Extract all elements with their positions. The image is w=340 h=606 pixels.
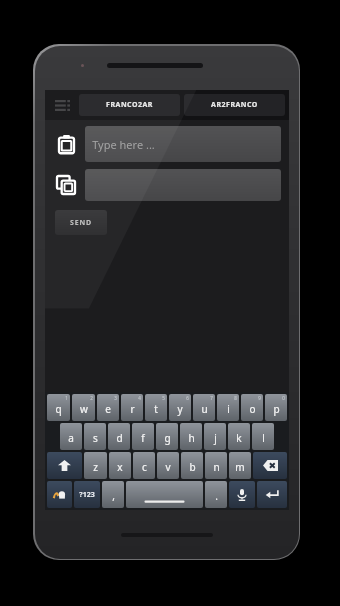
staticText: k xyxy=(236,431,242,445)
button[interactable]: r xyxy=(121,394,143,421)
staticText: 0 xyxy=(282,395,285,401)
staticText: 1 xyxy=(65,395,68,401)
staticText: j xyxy=(214,431,217,445)
staticText: i xyxy=(227,402,230,416)
button[interactable]: Enter xyxy=(257,481,287,508)
staticText: l xyxy=(262,431,265,445)
button[interactable]: j xyxy=(204,423,226,450)
button[interactable]: y xyxy=(169,394,191,421)
button[interactable]: Voice input xyxy=(229,481,255,508)
staticText: 4 xyxy=(138,395,141,401)
button[interactable]: Switch language xyxy=(47,481,72,508)
staticText: f xyxy=(141,431,145,445)
button[interactable]: a xyxy=(60,423,82,450)
button[interactable]: , xyxy=(102,481,124,508)
button[interactable]: FRANCO2AR xyxy=(79,94,180,116)
button[interactable]: Menu xyxy=(45,90,79,120)
button[interactable]: n xyxy=(205,452,227,479)
staticText: 2 xyxy=(90,395,93,401)
staticText: x xyxy=(117,460,123,474)
staticText: u xyxy=(201,402,208,416)
staticText: Type here ... xyxy=(92,137,155,152)
staticText: n xyxy=(213,460,220,474)
staticText: , xyxy=(112,489,115,503)
staticText: p xyxy=(273,402,280,416)
button[interactable]: l xyxy=(252,423,274,450)
button[interactable]: Paste xyxy=(51,129,81,159)
button[interactable]: k xyxy=(228,423,250,450)
button[interactable]: c xyxy=(133,452,155,479)
button[interactable]: q xyxy=(47,394,70,421)
staticText: 6 xyxy=(186,395,189,401)
staticText: . xyxy=(215,489,218,503)
staticText: 5 xyxy=(162,395,165,401)
button[interactable]: p xyxy=(265,394,287,421)
button[interactable] xyxy=(85,169,281,201)
button[interactable]: z xyxy=(84,452,107,479)
button[interactable]: b xyxy=(181,452,203,479)
staticText: 9 xyxy=(258,395,261,401)
button[interactable]: s xyxy=(84,423,106,450)
staticText: y xyxy=(177,402,183,416)
staticText: 8 xyxy=(234,395,237,401)
button[interactable]: Symbols xyxy=(74,481,100,508)
button[interactable]: Copy xyxy=(51,170,81,200)
button[interactable]: x xyxy=(109,452,131,479)
button[interactable]: w xyxy=(72,394,95,421)
button[interactable]: d xyxy=(108,423,130,450)
button[interactable]: t xyxy=(145,394,167,421)
button[interactable]: m xyxy=(229,452,251,479)
button[interactable]: f xyxy=(132,423,154,450)
button[interactable]: . xyxy=(205,481,227,508)
button[interactable] xyxy=(126,481,203,508)
staticText: m xyxy=(235,460,245,474)
staticText: z xyxy=(93,460,98,474)
staticText: c xyxy=(142,460,147,474)
staticText: AR2FRANCO xyxy=(211,100,258,110)
button[interactable]: v xyxy=(157,452,179,479)
staticText: s xyxy=(93,431,98,445)
staticText: d xyxy=(116,431,123,445)
button[interactable]: SEND xyxy=(55,210,107,235)
button[interactable]: Backspace xyxy=(253,452,287,479)
staticText: SEND xyxy=(70,218,92,228)
staticText: a xyxy=(68,431,74,445)
staticText: w xyxy=(80,402,88,416)
button[interactable]: e xyxy=(97,394,119,421)
button[interactable]: o xyxy=(241,394,263,421)
staticText: h xyxy=(188,431,195,445)
staticText: q xyxy=(55,402,62,416)
button[interactable]: g xyxy=(156,423,178,450)
staticText: FRANCO2AR xyxy=(106,100,153,110)
staticText: e xyxy=(105,402,111,416)
staticText: t xyxy=(154,402,158,416)
staticText: g xyxy=(164,431,171,445)
staticText: 7 xyxy=(210,395,213,401)
staticText: v xyxy=(165,460,171,474)
staticText: o xyxy=(249,402,256,416)
button[interactable]: AR2FRANCO xyxy=(184,94,285,116)
button[interactable]: Shift xyxy=(47,452,82,479)
staticText: b xyxy=(189,460,196,474)
staticText: r xyxy=(130,402,135,416)
button[interactable]: u xyxy=(193,394,215,421)
button[interactable]: h xyxy=(180,423,202,450)
button[interactable]: i xyxy=(217,394,239,421)
staticText: ?123 xyxy=(79,490,95,500)
button[interactable]: Type here ... xyxy=(85,126,281,162)
staticText: 3 xyxy=(114,395,117,401)
